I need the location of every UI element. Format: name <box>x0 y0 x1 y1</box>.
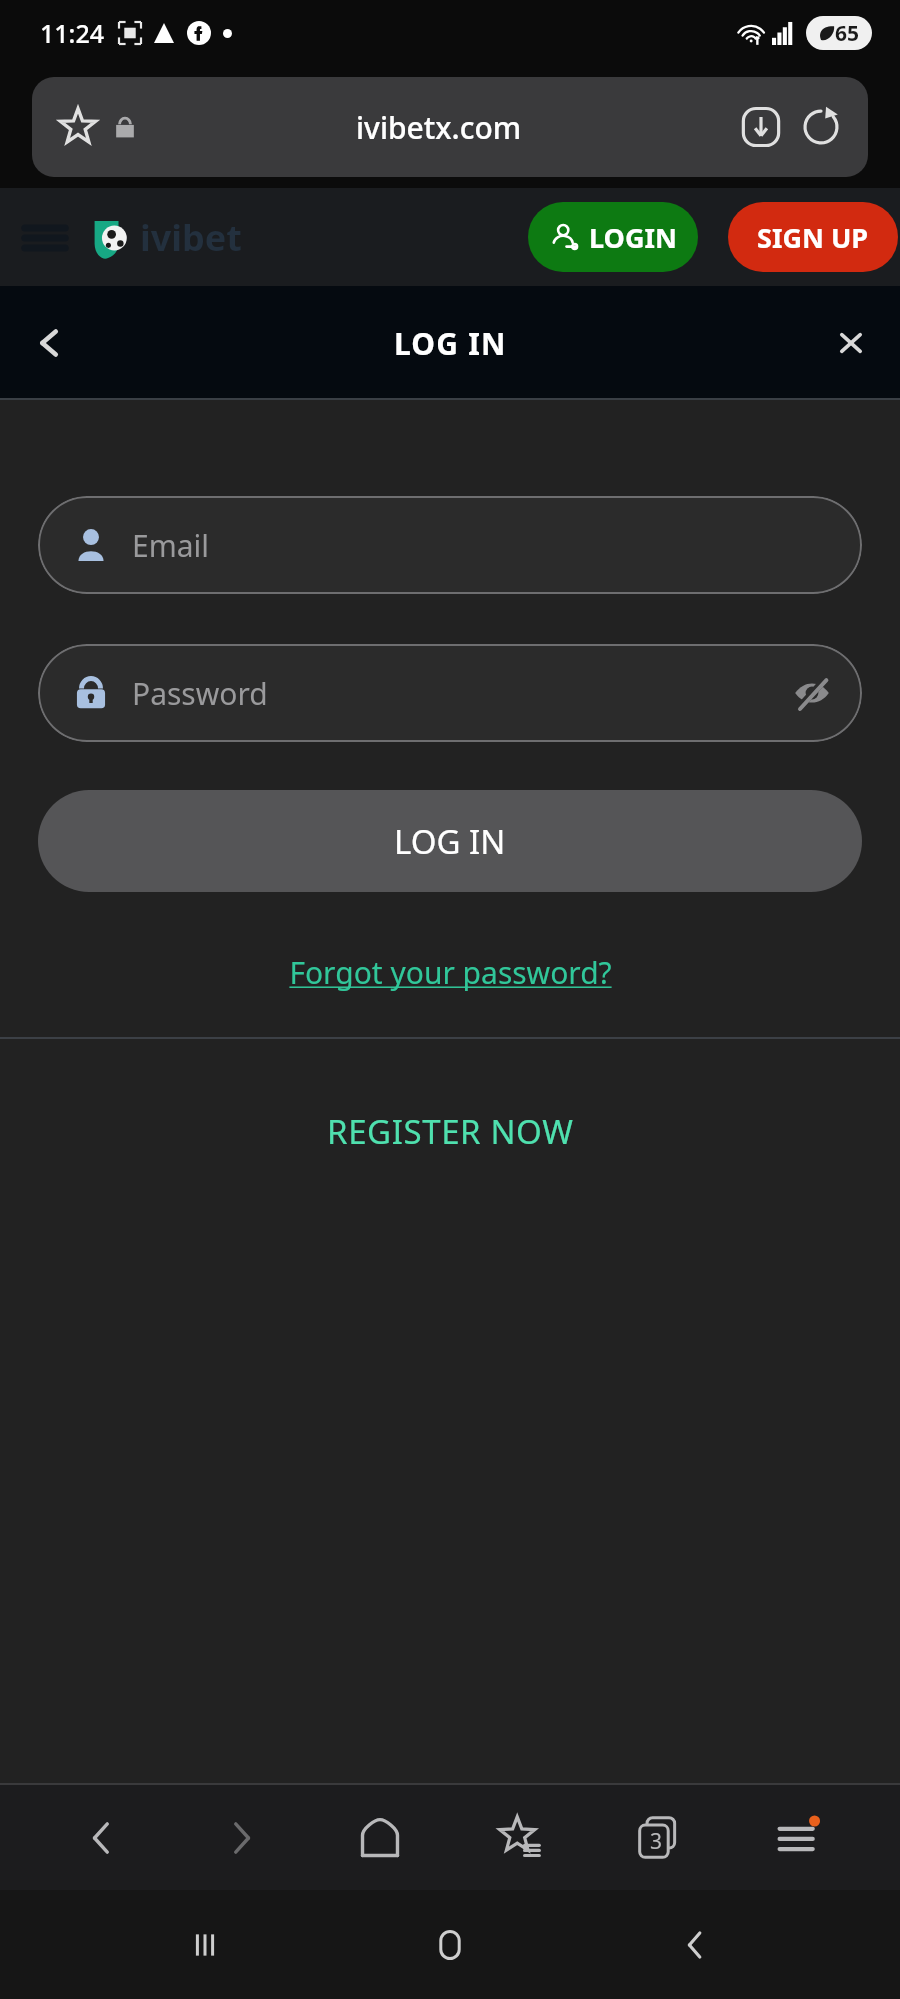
staticText: 3 <box>650 1827 663 1856</box>
button[interactable]: Download <box>740 106 782 148</box>
button[interactable]: Password <box>38 644 862 742</box>
button[interactable]: Bookmark <box>58 107 98 147</box>
button[interactable]: Back <box>26 319 74 367</box>
button[interactable]: LOG IN <box>38 790 862 892</box>
button[interactable]: Email <box>38 496 862 594</box>
button[interactable]: Recent apps <box>165 1905 245 1985</box>
staticText: Email <box>132 525 210 566</box>
button[interactable]: LOGIN <box>528 202 698 272</box>
button[interactable]: SIGN UP <box>728 202 898 272</box>
staticText: 65 <box>835 19 860 48</box>
button[interactable]: Tabs <box>622 1801 696 1875</box>
button[interactable]: REGISTER NOW <box>317 1099 584 1164</box>
staticText: LOG IN <box>394 323 507 364</box>
staticText: SIGN UP <box>757 219 869 256</box>
button[interactable]: Close <box>830 322 872 364</box>
staticText: Password <box>132 673 268 714</box>
button[interactable]: Bookmarks <box>483 1801 557 1875</box>
staticText: LOGIN <box>589 219 677 256</box>
staticText: ivibet <box>140 213 242 262</box>
staticText: 11:24 <box>40 16 105 50</box>
button[interactable]: More options <box>761 1801 835 1875</box>
button[interactable]: Show password <box>792 673 832 713</box>
button[interactable]: Home <box>343 1801 417 1875</box>
button[interactable]: Back <box>655 1905 735 1985</box>
button[interactable]: Home <box>410 1905 490 1985</box>
button[interactable]: Forward <box>204 1801 278 1875</box>
button[interactable]: Back <box>65 1801 139 1875</box>
button[interactable]: Menu <box>22 215 68 261</box>
button[interactable]: Reload <box>800 106 842 148</box>
button[interactable]: Bookmark <box>32 77 868 177</box>
staticText: LOG IN <box>394 819 506 864</box>
button[interactable]: Forgot your password? <box>281 944 620 1001</box>
staticText: ivibetx.com <box>356 107 522 148</box>
